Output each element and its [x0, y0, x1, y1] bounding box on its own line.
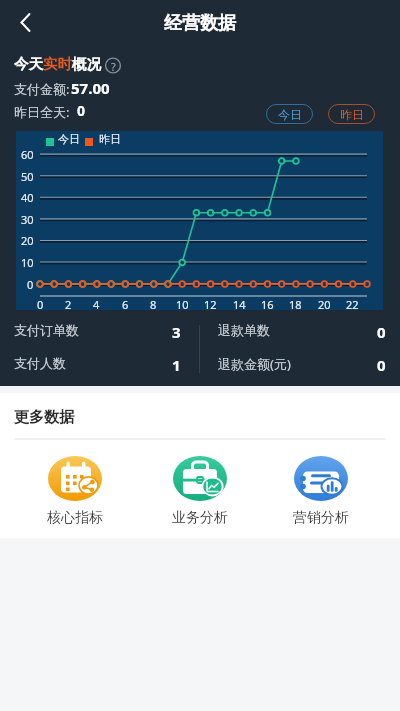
button[interactable] [0, 0, 56, 45]
staticText: 20 [21, 233, 34, 248]
staticText: 6 [122, 297, 129, 312]
staticText: 14 [233, 297, 246, 312]
staticText: 支付订单数 [14, 322, 79, 338]
staticText: 更多数据 [14, 408, 74, 427]
staticText: 10 [21, 255, 34, 270]
staticText: 经营数据 [164, 12, 236, 35]
staticText: 今日 [278, 107, 302, 122]
staticText: 18 [289, 297, 302, 312]
staticText: ? [111, 59, 116, 74]
button[interactable]: 营销分析 [281, 453, 361, 535]
staticText: 0 [27, 277, 34, 292]
staticText: 昨日 [340, 107, 364, 122]
staticText: 支付人数 [14, 355, 66, 371]
staticText: 昨日全天: [14, 103, 70, 121]
staticText: 实时 [43, 55, 72, 73]
staticText: 60 [21, 147, 34, 162]
staticText: 3 [172, 322, 181, 342]
staticText: 今天 [14, 55, 43, 73]
staticText: 概况 [72, 55, 101, 73]
staticText: 营销分析 [293, 509, 349, 527]
staticText: 核心指标 [47, 509, 103, 527]
staticText: 4 [93, 297, 100, 312]
staticText: 昨日 [99, 132, 121, 146]
button[interactable]: 今日 [266, 104, 313, 124]
staticText: 0 [77, 101, 86, 120]
staticText: 业务分析 [172, 509, 228, 527]
staticText: 退款单数 [218, 322, 270, 338]
staticText: 12 [204, 297, 217, 312]
button[interactable]: 核心指标 [35, 453, 115, 535]
staticText: 10 [176, 297, 189, 312]
staticText: 支付金额: [14, 80, 70, 98]
staticText: 0 [37, 297, 44, 312]
staticText: 50 [21, 169, 34, 184]
staticText: 30 [21, 212, 34, 227]
staticText: 0 [377, 355, 386, 375]
staticText: 8 [150, 297, 157, 312]
staticText: 16 [261, 297, 274, 312]
button[interactable]: 业务分析 [160, 453, 240, 535]
staticText: 2 [65, 297, 72, 312]
button[interactable]: 昨日 [328, 104, 375, 124]
staticText: 20 [318, 297, 331, 312]
staticText: 今日 [58, 132, 80, 146]
staticText: 1 [172, 355, 181, 375]
staticText: 57.00 [71, 78, 110, 98]
staticText: 退款金额(元) [218, 355, 291, 373]
staticText: 40 [21, 190, 34, 205]
staticText: 22 [346, 297, 359, 312]
staticText: 0 [377, 322, 386, 342]
